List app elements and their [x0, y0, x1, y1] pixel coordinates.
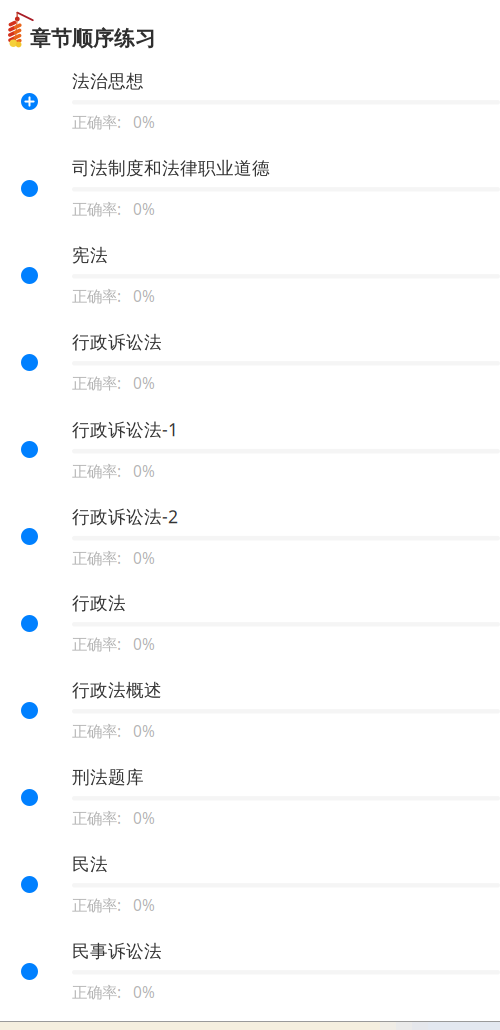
staticText: 行政法: [72, 592, 126, 615]
staticText: 行政法概述: [72, 679, 162, 702]
button[interactable]: 行政诉讼法-1: [0, 406, 500, 493]
staticText: 章节顺序练习: [30, 26, 156, 52]
staticText: 正确率: 0%: [72, 199, 155, 220]
button[interactable]: 法治思想: [0, 58, 500, 145]
staticText: 民事诉讼法: [72, 940, 162, 963]
button[interactable]: 行政法概述: [0, 667, 500, 754]
button[interactable]: 刑法题库: [0, 754, 500, 841]
staticText: 行政诉讼法: [72, 331, 162, 354]
button[interactable]: 行政诉讼法: [0, 319, 500, 406]
staticText: 正确率: 0%: [72, 547, 155, 569]
staticText: 行政诉讼法-2: [72, 504, 178, 528]
staticText: 正确率: 0%: [72, 895, 155, 916]
button[interactable]: 宪法: [0, 232, 500, 319]
staticText: 刑法题库: [72, 766, 144, 789]
staticText: 民法: [72, 853, 108, 876]
staticText: 司法制度和法律职业道德: [72, 157, 270, 180]
staticText: 法治思想: [72, 70, 144, 93]
staticText: 正确率: 0%: [72, 808, 155, 829]
button[interactable]: 行政诉讼法-2: [0, 493, 500, 580]
staticText: 正确率: 0%: [72, 373, 155, 394]
staticText: 正确率: 0%: [72, 286, 155, 307]
staticText: 行政诉讼法-1: [72, 417, 178, 441]
button[interactable]: 民法: [0, 841, 500, 928]
staticText: 正确率: 0%: [72, 721, 155, 742]
button[interactable]: 行政法: [0, 580, 500, 667]
button[interactable]: 司法制度和法律职业道德: [0, 145, 500, 232]
staticText: 正确率: 0%: [72, 460, 155, 482]
staticText: 正确率: 0%: [72, 112, 155, 133]
staticText: 正确率: 0%: [72, 634, 155, 655]
button[interactable]: 民事诉讼法: [0, 928, 500, 1015]
staticText: 正确率: 0%: [72, 982, 155, 1003]
staticText: 宪法: [72, 244, 108, 267]
